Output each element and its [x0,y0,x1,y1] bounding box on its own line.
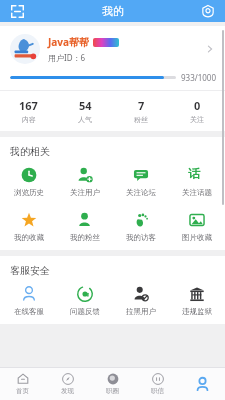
staticText: 首页 [16,387,29,395]
staticText: 违规监狱 [182,307,212,316]
staticText: 167 [19,98,38,113]
staticText: 话题 [188,166,206,184]
button[interactable]: 关注用户 [57,166,113,197]
button[interactable]: 167 [0,98,57,124]
button[interactable]: 职圈 [90,368,135,400]
button[interactable]: Java帮帮 [0,26,225,72]
staticText: 人气 [78,115,92,124]
button[interactable]: 话题 [169,166,225,197]
button[interactable]: 首页 [0,368,45,400]
button[interactable]: 图片收藏 [169,211,225,242]
button[interactable]: 7 [113,98,169,124]
staticText: 职圈 [106,387,119,395]
button[interactable]: 在线客服 [0,285,57,316]
button[interactable]: 54 [57,98,113,124]
button[interactable]: Scan QR code [8,2,26,20]
button[interactable]: 0 [169,98,225,124]
staticText: 在线客服 [14,307,44,316]
staticText: 用户ID：6 [48,52,86,63]
staticText: 浏览历史 [14,188,44,197]
staticText: 我的相关 [10,145,50,158]
button[interactable]: 职信 [135,368,180,400]
button[interactable]: 发现 [45,368,90,400]
staticText: 7 [138,98,145,113]
staticText: 粉丝 [134,115,148,124]
staticText: 职信 [151,387,164,395]
staticText: 拉黑用户 [126,307,156,316]
staticText: 0 [194,98,201,113]
staticText: 问题反馈 [70,307,100,316]
staticText: 关注论坛 [126,188,156,197]
staticText: 关注话题 [182,188,212,197]
staticText: 客服安全 [10,264,50,277]
staticText: 我的粉丝 [70,233,100,242]
staticText: Java帮帮 [48,35,89,49]
staticText: 图片收藏 [182,233,212,242]
button[interactable]: 我的访客 [113,211,169,242]
button[interactable] [180,368,225,400]
button[interactable]: 我的粉丝 [57,211,113,242]
staticText: 54 [79,98,92,113]
staticText: 我的 [102,4,124,18]
staticText: 发现 [61,387,74,395]
button[interactable]: 浏览历史 [0,166,57,197]
button[interactable]: 问题反馈 [57,285,113,316]
button[interactable]: 关注论坛 [113,166,169,197]
staticText: 内容 [22,115,36,124]
button[interactable]: 拉黑用户 [113,285,169,316]
button[interactable]: 违规监狱 [169,285,225,316]
staticText: 关注 [190,115,204,124]
button[interactable]: Settings [199,2,217,20]
staticText: 933/1000 [181,72,217,83]
staticText: 关注用户 [70,188,100,197]
staticText: 我的收藏 [14,233,44,242]
staticText: 我的访客 [126,233,156,242]
button[interactable]: 我的收藏 [0,211,57,242]
